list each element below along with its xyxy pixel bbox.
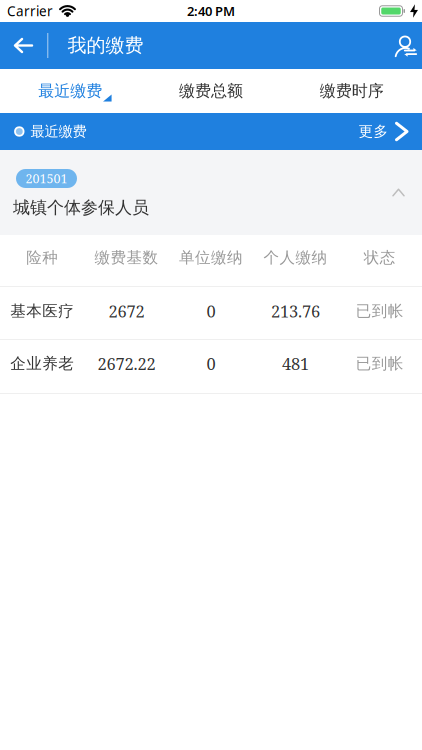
staticText: Carrier [7,2,53,20]
button[interactable]: Back [0,39,47,52]
staticText: 险种 [26,248,58,267]
staticText: 2:40 PM [187,2,235,20]
button[interactable]: 201501 [16,169,77,188]
staticText: 缴费基数 [95,248,159,267]
staticText: 缴费总额 [179,81,243,101]
staticText: 已到帐 [356,354,404,373]
staticText: 单位缴纳 [179,248,243,267]
staticText: 我的缴费 [67,33,143,57]
staticText: 基本医疗 [10,301,74,321]
button[interactable]: 更多 [358,122,422,141]
staticText: 缴费时序 [320,81,384,101]
staticText: 城镇个体参保人员 [13,197,149,218]
staticText: 企业养老 [10,354,74,373]
staticText: 2672 [109,300,145,322]
button[interactable]: Switch account [389,33,422,57]
button[interactable]: 收起 [393,189,422,196]
staticText: 481 [282,352,309,375]
staticText: 最近缴费 [31,122,87,140]
staticText: 0 [206,352,215,375]
button[interactable]: 缴费时序 [281,69,422,113]
staticText: 已到帐 [356,301,404,321]
staticText: 更多 [358,122,388,141]
staticText: 0 [206,300,215,322]
staticText: 213.76 [271,300,320,322]
staticText: 2672.22 [98,352,156,375]
staticText: 状态 [364,248,396,267]
button[interactable]: 最近缴费 [0,69,141,113]
staticText: 最近缴费 [38,81,102,101]
staticText: 201501 [25,170,67,187]
staticText: 个人缴纳 [263,248,327,267]
button[interactable]: 缴费总额 [141,69,281,113]
